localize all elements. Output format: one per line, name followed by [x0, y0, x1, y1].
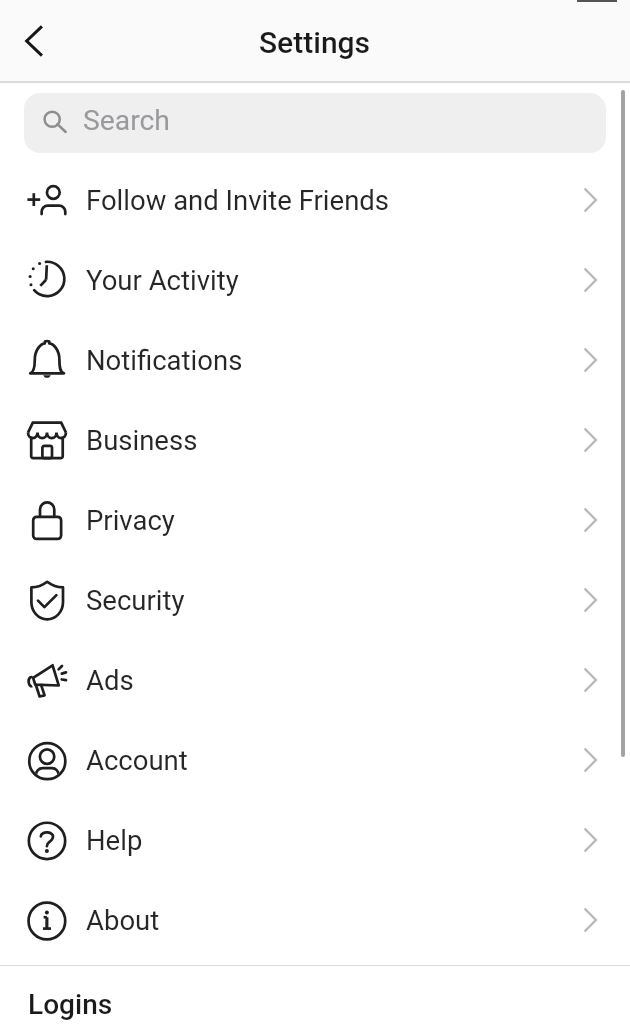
staticText: Settings: [259, 25, 371, 60]
staticText: Follow and Invite Friends: [86, 184, 390, 216]
button[interactable]: Search: [24, 93, 606, 153]
button[interactable]: Account: [0, 720, 630, 800]
staticText: Account: [86, 744, 188, 776]
staticText: About: [86, 904, 160, 936]
staticText: Search: [83, 104, 170, 137]
staticText: Help: [86, 824, 143, 856]
button[interactable]: About: [0, 880, 630, 960]
button[interactable]: Business: [0, 400, 630, 480]
button[interactable]: Security: [0, 560, 630, 640]
staticText: Security: [86, 584, 185, 616]
button[interactable]: Back: [5, 10, 67, 72]
staticText: Your Activity: [86, 264, 239, 296]
button[interactable]: Help: [0, 800, 630, 880]
button[interactable]: Your Activity: [0, 240, 630, 320]
staticText: Business: [86, 424, 198, 456]
button[interactable]: Notifications: [0, 320, 630, 400]
staticText: Notifications: [86, 344, 243, 376]
staticText: Ads: [86, 664, 134, 696]
staticText: Logins: [28, 988, 113, 1021]
button[interactable]: Follow and Invite Friends: [0, 160, 630, 240]
button[interactable]: Privacy: [0, 480, 630, 560]
staticText: Privacy: [86, 504, 175, 536]
button[interactable]: Ads: [0, 640, 630, 720]
